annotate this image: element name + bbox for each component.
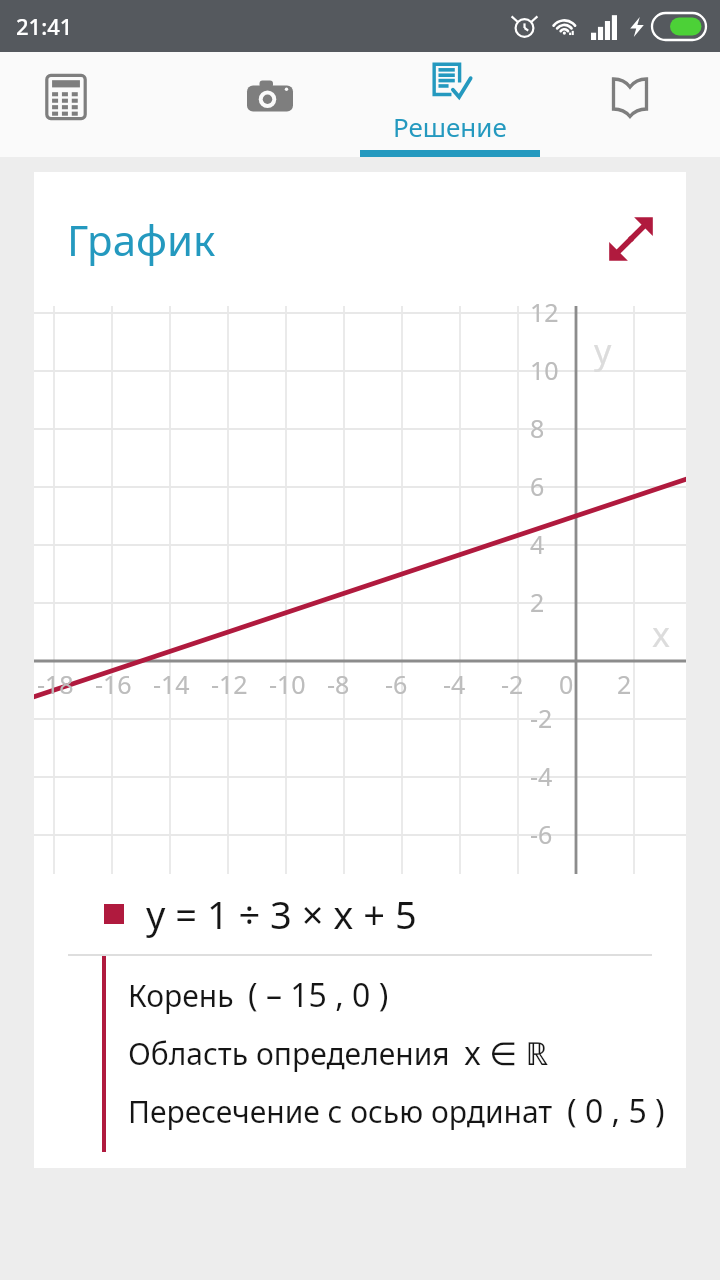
staticText: x ∈ ℝ xyxy=(464,1031,549,1075)
staticText: 6 xyxy=(530,469,545,503)
staticText: -2 xyxy=(501,667,524,701)
staticText: 2 xyxy=(530,585,545,619)
staticText: -4 xyxy=(530,759,553,793)
staticText: График xyxy=(67,211,216,268)
staticText: -8 xyxy=(327,667,350,701)
button[interactable]: Пересечение с осью ординат xyxy=(128,1082,665,1140)
staticText: -4 xyxy=(443,667,466,701)
staticText: 21:41 xyxy=(16,11,73,41)
staticText: 8 xyxy=(530,411,545,445)
staticText: Пересечение с осью ординат xyxy=(128,1091,553,1132)
staticText: 10 xyxy=(530,353,559,387)
staticText: 12 xyxy=(530,295,559,329)
staticText: ( – 15 , 0 ) xyxy=(248,973,389,1017)
staticText: 4 xyxy=(530,527,545,561)
button[interactable]: Учебник xyxy=(540,52,720,157)
button[interactable]: Корень xyxy=(128,966,389,1024)
button[interactable]: Область определения xyxy=(128,1024,549,1082)
staticText: Корень xyxy=(128,975,234,1016)
button[interactable]: y = 1 ÷ 3 × x + 5 xyxy=(34,874,686,954)
staticText: -16 xyxy=(95,667,132,701)
staticText: 2 xyxy=(617,667,632,701)
staticText: y = 1 ÷ 3 × x + 5 xyxy=(146,888,417,940)
button[interactable]: Калькулятор xyxy=(0,52,180,157)
staticText: -2 xyxy=(530,701,553,735)
button[interactable]: Решение xyxy=(360,52,540,157)
staticText: 0 xyxy=(559,667,574,701)
staticText: -6 xyxy=(385,667,408,701)
staticText: x xyxy=(652,611,670,657)
staticText: Решение xyxy=(393,109,507,144)
staticText: -12 xyxy=(211,667,248,701)
staticText: -6 xyxy=(530,817,553,851)
staticText: -14 xyxy=(153,667,190,701)
staticText: -10 xyxy=(269,667,306,701)
staticText: Область определения xyxy=(128,1033,450,1074)
staticText: -18 xyxy=(37,667,74,701)
button[interactable]: Развернуть график xyxy=(602,210,660,268)
staticText: ( 0 , 5 ) xyxy=(567,1089,665,1133)
staticText: y xyxy=(594,328,612,374)
button[interactable]: Камера xyxy=(180,52,360,157)
